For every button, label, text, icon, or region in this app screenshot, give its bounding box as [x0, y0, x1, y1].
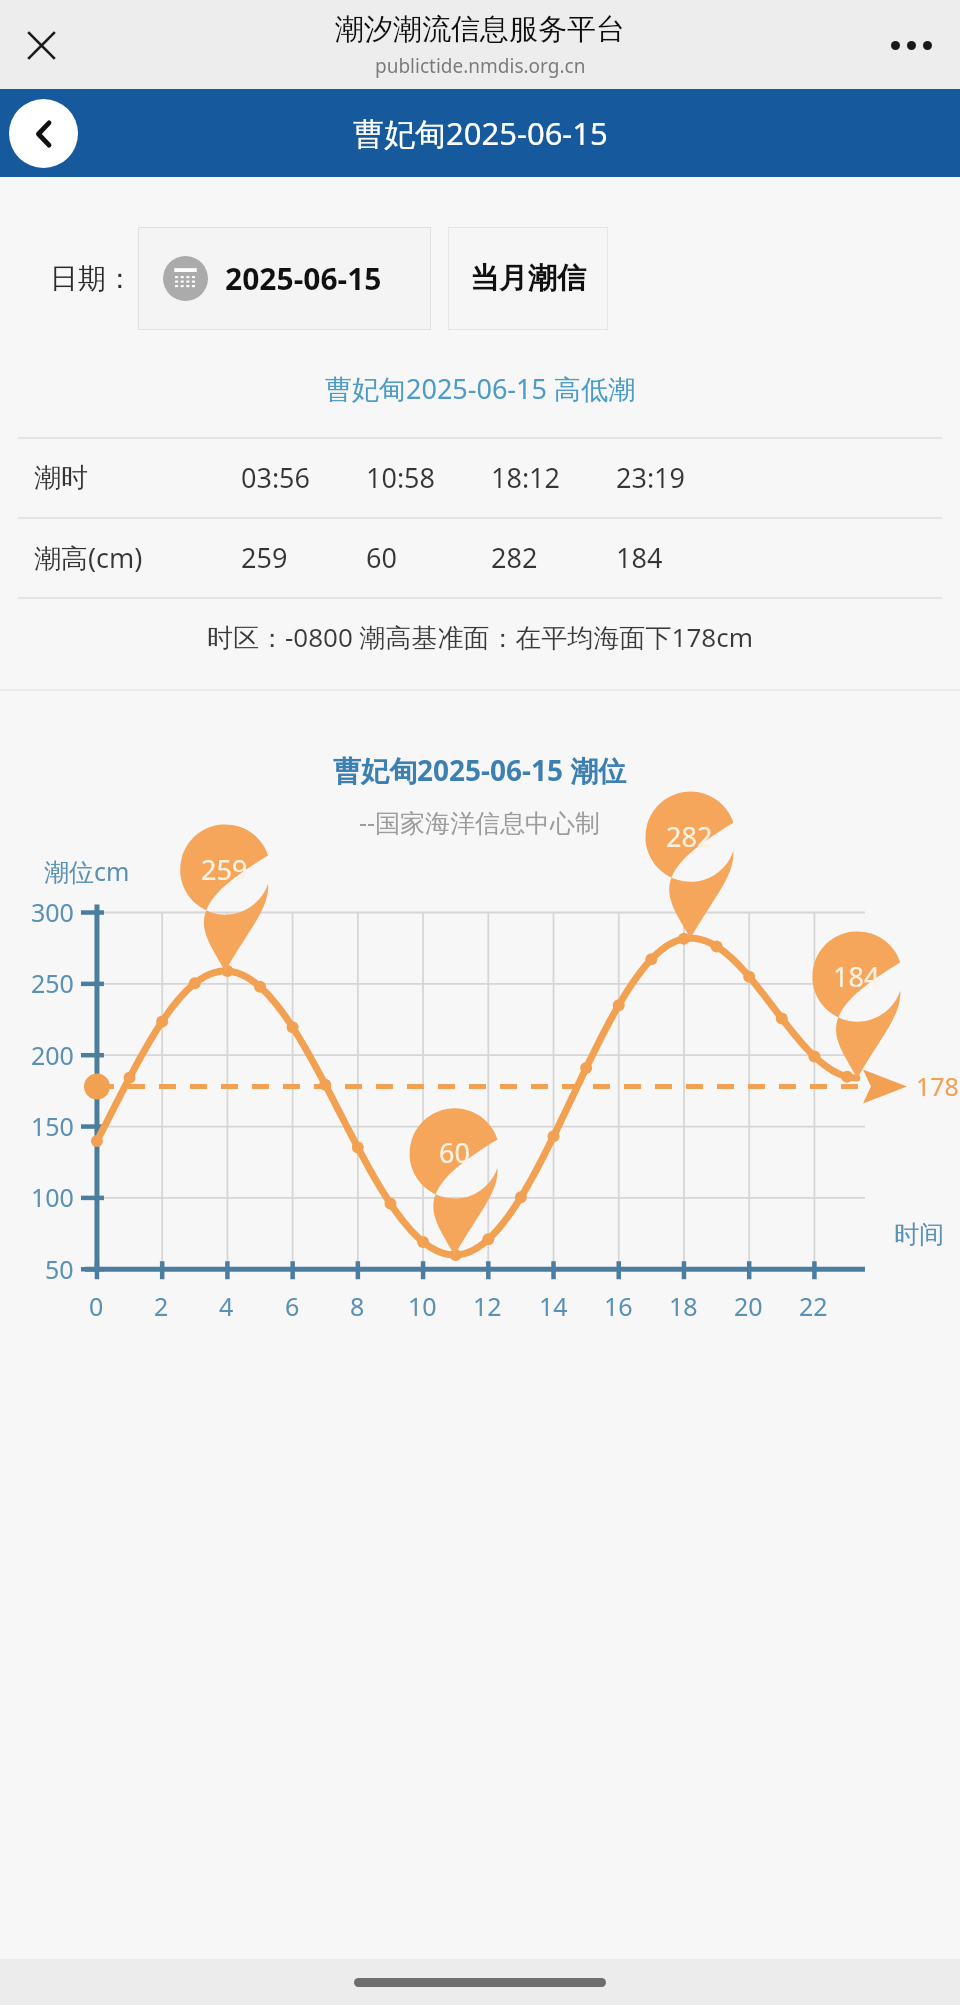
staticText: 282	[666, 818, 713, 855]
staticText: 10:58	[366, 459, 436, 496]
staticText: 8	[350, 1289, 365, 1323]
staticText: 20	[734, 1289, 763, 1323]
staticText: 18:12	[491, 459, 561, 496]
staticText: 259	[201, 851, 248, 888]
staticText: 18	[669, 1289, 698, 1323]
button[interactable]: Close	[12, 16, 70, 74]
staticText: 50	[45, 1252, 74, 1286]
staticText: 300	[31, 895, 74, 929]
button[interactable]: Back	[9, 99, 78, 168]
staticText: 2025-06-15	[225, 258, 382, 299]
staticText: 22	[799, 1289, 828, 1323]
button[interactable]: 当月潮信	[448, 227, 608, 330]
staticText: 03:56	[241, 459, 311, 496]
staticText: 潮高(cm)	[34, 539, 143, 576]
button[interactable]: 2025-06-15	[138, 227, 431, 330]
staticText: 6	[285, 1289, 300, 1323]
staticText: 12	[473, 1289, 502, 1323]
staticText: 178	[916, 1069, 959, 1103]
staticText: 潮时	[34, 461, 88, 495]
staticText: 潮汐潮流信息服务平台	[335, 11, 625, 48]
staticText: 潮位cm	[44, 854, 130, 888]
staticText: 184	[616, 539, 663, 576]
staticText: 日期：	[50, 261, 134, 296]
staticText: 250	[31, 966, 74, 1000]
staticText: 23:19	[616, 459, 686, 496]
staticText: 282	[491, 539, 538, 576]
staticText: 100	[31, 1180, 74, 1214]
staticText: 14	[539, 1289, 568, 1323]
staticText: 曹妃甸2025-06-15	[353, 112, 608, 154]
staticText: 时间	[894, 1219, 944, 1250]
staticText: 4	[219, 1289, 234, 1323]
staticText: 60	[366, 539, 397, 576]
staticText: 259	[241, 539, 288, 576]
staticText: 曹妃甸2025-06-15 高低潮	[325, 370, 635, 407]
staticText: publictide.nmdis.org.cn	[375, 53, 586, 79]
button[interactable]: More options	[880, 14, 942, 76]
staticText: 时区：-0800 潮高基准面：在平均海面下178cm	[207, 619, 754, 655]
staticText: 当月潮信	[470, 260, 586, 297]
staticText: 曹妃甸2025-06-15 潮位	[333, 751, 627, 789]
staticText: 10	[408, 1289, 437, 1323]
staticText: 2	[154, 1289, 169, 1323]
staticText: 0	[89, 1289, 104, 1323]
staticText: 200	[31, 1038, 74, 1072]
staticText: --国家海洋信息中心制	[359, 805, 601, 839]
staticText: 16	[604, 1289, 633, 1323]
staticText: 150	[31, 1109, 74, 1143]
staticText: 60	[439, 1134, 470, 1171]
staticText: 184	[833, 958, 880, 995]
